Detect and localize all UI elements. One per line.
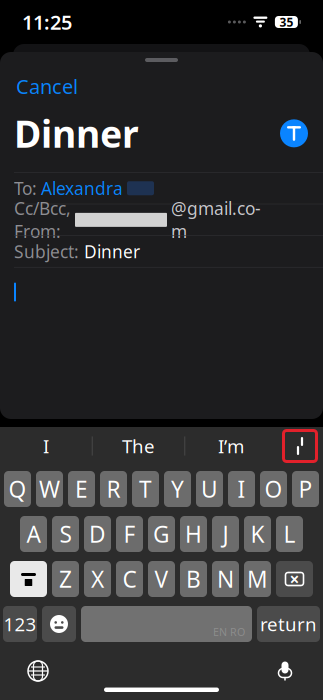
staticText: I	[237, 474, 245, 504]
staticText: D	[89, 519, 106, 549]
staticText: E	[75, 474, 88, 504]
staticText: 35	[279, 14, 293, 30]
button[interactable]: Hide predictions	[277, 427, 323, 465]
staticText: M	[247, 564, 268, 594]
button[interactable]: E	[68, 471, 95, 507]
staticText: P	[298, 474, 312, 504]
button[interactable]: P	[292, 471, 319, 507]
staticText: F	[123, 519, 135, 549]
staticText: B	[186, 564, 201, 594]
staticText: I	[43, 434, 49, 458]
button[interactable]: Cancel	[14, 68, 80, 105]
button[interactable]: Delete	[276, 561, 313, 597]
button[interactable]: Send	[279, 118, 309, 148]
staticText: O	[264, 474, 282, 504]
staticText: C	[122, 564, 136, 594]
button[interactable]: To:	[0, 173, 323, 204]
staticText: L	[283, 519, 295, 549]
staticText: Z	[59, 564, 72, 594]
button[interactable]: H	[180, 516, 207, 552]
staticText: A	[26, 519, 40, 549]
button[interactable]: The	[93, 427, 184, 465]
button[interactable]: N	[212, 561, 239, 597]
staticText: G	[153, 519, 170, 549]
staticText: I’m	[218, 434, 244, 458]
staticText: Dinner	[14, 109, 139, 158]
staticText: @gmail.com	[171, 197, 261, 243]
button[interactable]: Subject:	[0, 236, 323, 267]
button[interactable]: Cc/Bcc, From:	[0, 204, 323, 235]
staticText: The	[122, 434, 155, 458]
button[interactable]: L	[276, 516, 303, 552]
button[interactable]: C	[116, 561, 143, 597]
staticText: Y	[171, 474, 184, 504]
button[interactable]: I’m	[185, 427, 277, 465]
button[interactable]: return	[257, 606, 320, 642]
button[interactable]: J	[212, 516, 239, 552]
button[interactable]: Dictate	[267, 653, 303, 689]
button[interactable]: Z	[52, 561, 79, 597]
staticText: T	[139, 474, 152, 504]
staticText: return	[260, 612, 317, 636]
staticText: To:	[14, 177, 37, 200]
staticText: Dinner	[84, 240, 140, 263]
staticText: ×	[289, 567, 299, 590]
button[interactable]: 123	[3, 606, 37, 642]
button[interactable]: T	[132, 471, 159, 507]
staticText: Subject:	[14, 240, 79, 263]
button[interactable]: S	[52, 516, 79, 552]
button[interactable]: A	[20, 516, 47, 552]
button[interactable]: U	[196, 471, 223, 507]
staticText: S	[59, 519, 71, 549]
button[interactable]: R	[100, 471, 127, 507]
button[interactable]: G	[148, 516, 175, 552]
button[interactable]: Q	[4, 471, 31, 507]
staticText: Q	[8, 474, 26, 504]
button[interactable]: Switch keyboard	[20, 653, 56, 689]
staticText: Cancel	[16, 73, 78, 100]
button[interactable]: I	[0, 427, 92, 465]
button[interactable]: D	[84, 516, 111, 552]
button[interactable]: Space	[81, 606, 252, 642]
staticText: U	[201, 474, 218, 504]
staticText: Cc/Bcc, From:	[14, 197, 71, 243]
staticText: 123	[3, 612, 36, 636]
button[interactable]: F	[116, 516, 143, 552]
staticText: EN RO	[213, 625, 245, 639]
button[interactable]: M	[244, 561, 271, 597]
staticText: J	[222, 519, 228, 549]
staticText: 11:25	[22, 9, 72, 35]
button[interactable]: V	[148, 561, 175, 597]
button[interactable]: Emoji	[42, 606, 76, 642]
staticText: Alexandra	[41, 177, 123, 200]
staticText: V	[154, 564, 168, 594]
staticText: H	[185, 519, 202, 549]
button[interactable]: Shift	[10, 561, 47, 597]
staticText: R	[106, 474, 120, 504]
button[interactable]: Y	[164, 471, 191, 507]
button[interactable]: W	[36, 471, 63, 507]
staticText: N	[217, 564, 234, 594]
button[interactable]: O	[260, 471, 287, 507]
button[interactable]: X	[84, 561, 111, 597]
staticText: W	[39, 474, 60, 504]
button[interactable]: B	[180, 561, 207, 597]
staticText: K	[250, 519, 264, 549]
staticText: X	[91, 564, 104, 594]
button[interactable]: I	[228, 471, 255, 507]
button[interactable]: K	[244, 516, 271, 552]
